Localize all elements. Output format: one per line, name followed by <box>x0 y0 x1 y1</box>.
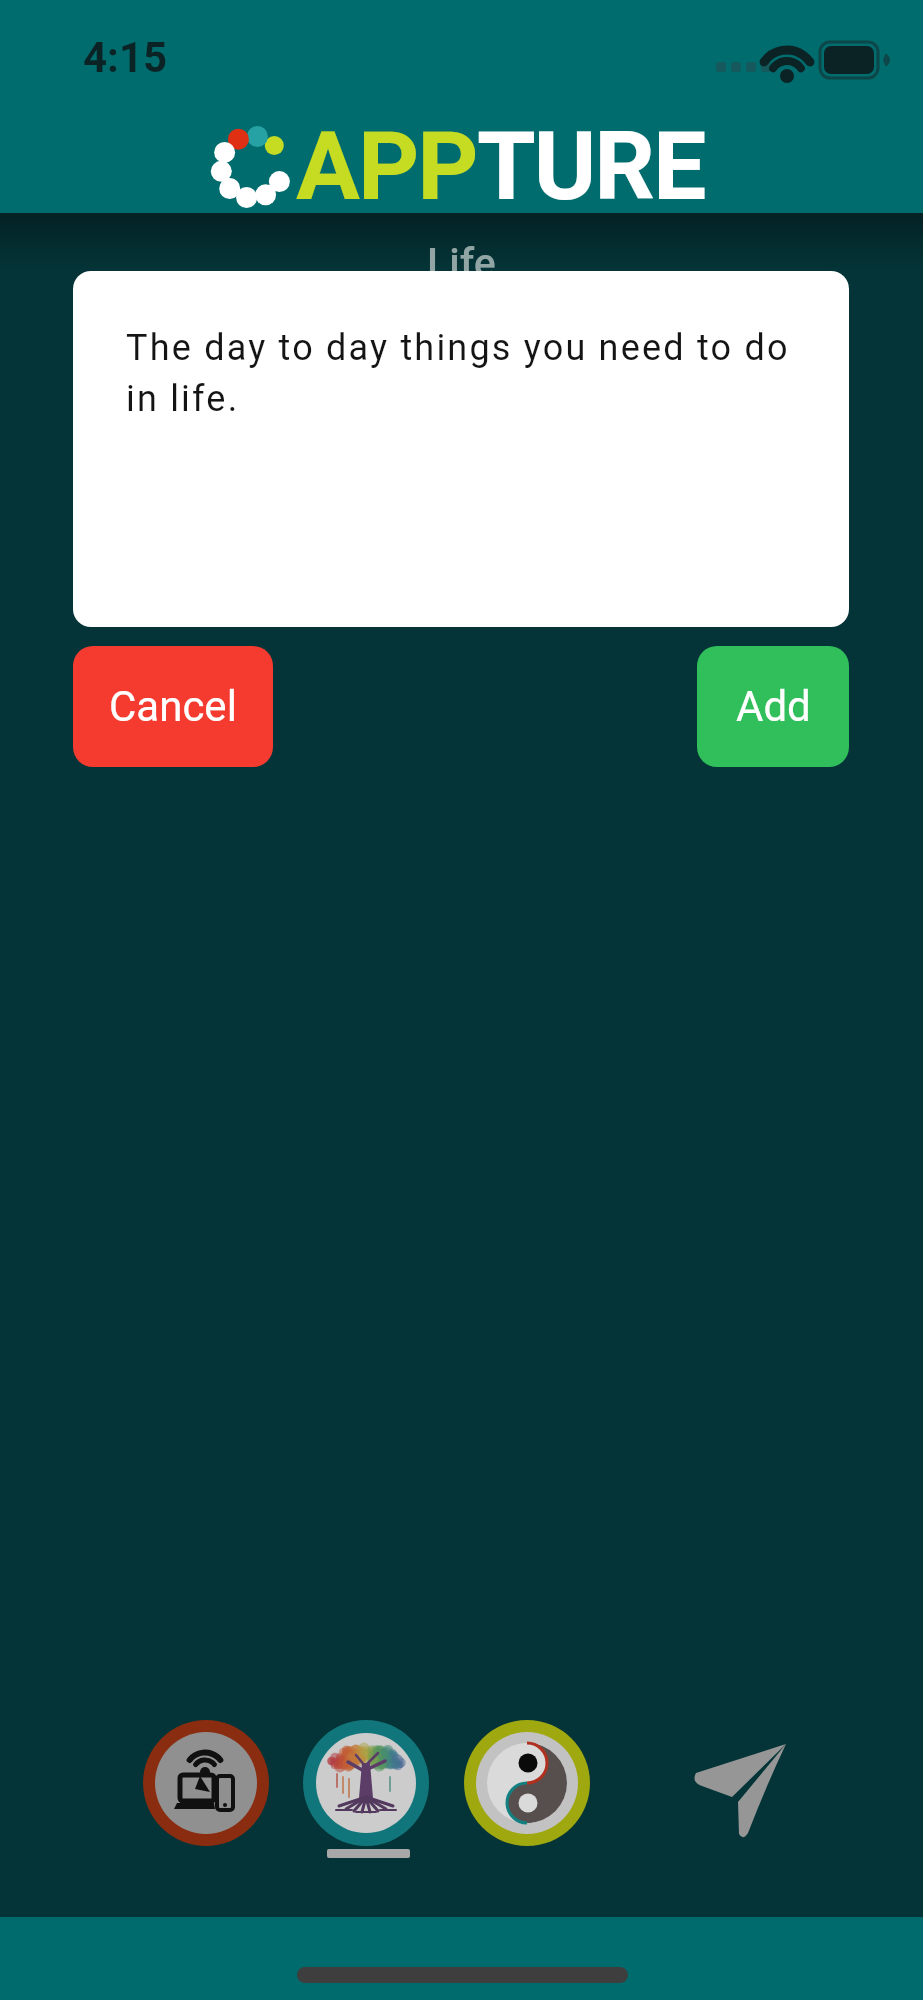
staticText: 4:15 <box>83 33 168 82</box>
button[interactable] <box>680 1722 800 1842</box>
button[interactable] <box>142 1719 270 1847</box>
button[interactable] <box>302 1719 430 1847</box>
staticText: Add <box>736 682 811 731</box>
button[interactable]: Cancel <box>73 646 273 767</box>
button[interactable] <box>463 1719 591 1847</box>
staticText: The day to day things you need to do in … <box>126 327 790 420</box>
button[interactable]: Add <box>697 646 849 767</box>
staticText: Life <box>427 239 496 287</box>
staticText: Cancel <box>109 682 237 731</box>
staticText: APP <box>296 111 477 222</box>
staticText: TURE <box>477 111 705 222</box>
